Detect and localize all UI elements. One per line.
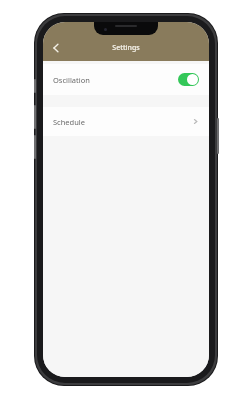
button[interactable]: Back [45,37,67,59]
button[interactable]: Oscillation toggle, on [178,73,199,86]
button[interactable]: Schedule [43,107,209,136]
staticText: Schedule [53,117,85,127]
button[interactable]: Oscillation [43,64,209,95]
staticText: Settings [43,43,209,53]
staticText: Oscillation [53,75,90,85]
